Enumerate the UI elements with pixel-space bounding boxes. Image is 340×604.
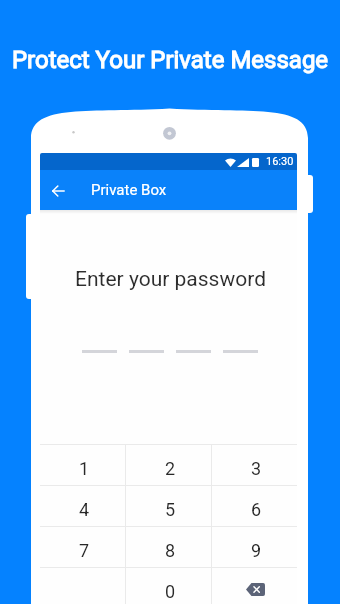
staticText: 0 [165,581,176,602]
button[interactable]: 7 [40,527,125,567]
staticText: 3 [251,458,262,479]
button[interactable]: 6 [212,486,297,526]
button[interactable]: 2 [126,445,211,485]
staticText: 2 [165,458,176,479]
staticText: 1 [79,458,90,479]
button[interactable]: 3 [212,445,297,485]
button[interactable]: Backspace [246,583,265,596]
staticText: 16:30 [266,155,294,168]
button[interactable]: 4 [40,486,125,526]
staticText: 7 [79,540,90,561]
staticText: 6 [251,499,262,520]
button[interactable]: Backspace [212,568,297,604]
button[interactable]: 1 [40,445,125,485]
staticText: Protect Your Private Message [0,46,340,74]
button[interactable]: 5 [126,486,211,526]
button[interactable]: Back [48,181,68,201]
button[interactable]: 0 [126,568,211,604]
staticText: Private Box [91,181,167,199]
staticText: 4 [79,499,90,520]
button[interactable]: 8 [126,527,211,567]
staticText: 5 [165,499,176,520]
button[interactable]: 9 [212,527,297,567]
staticText: Enter your password [42,267,297,292]
staticText: 9 [251,540,262,561]
staticText: 8 [165,540,176,561]
